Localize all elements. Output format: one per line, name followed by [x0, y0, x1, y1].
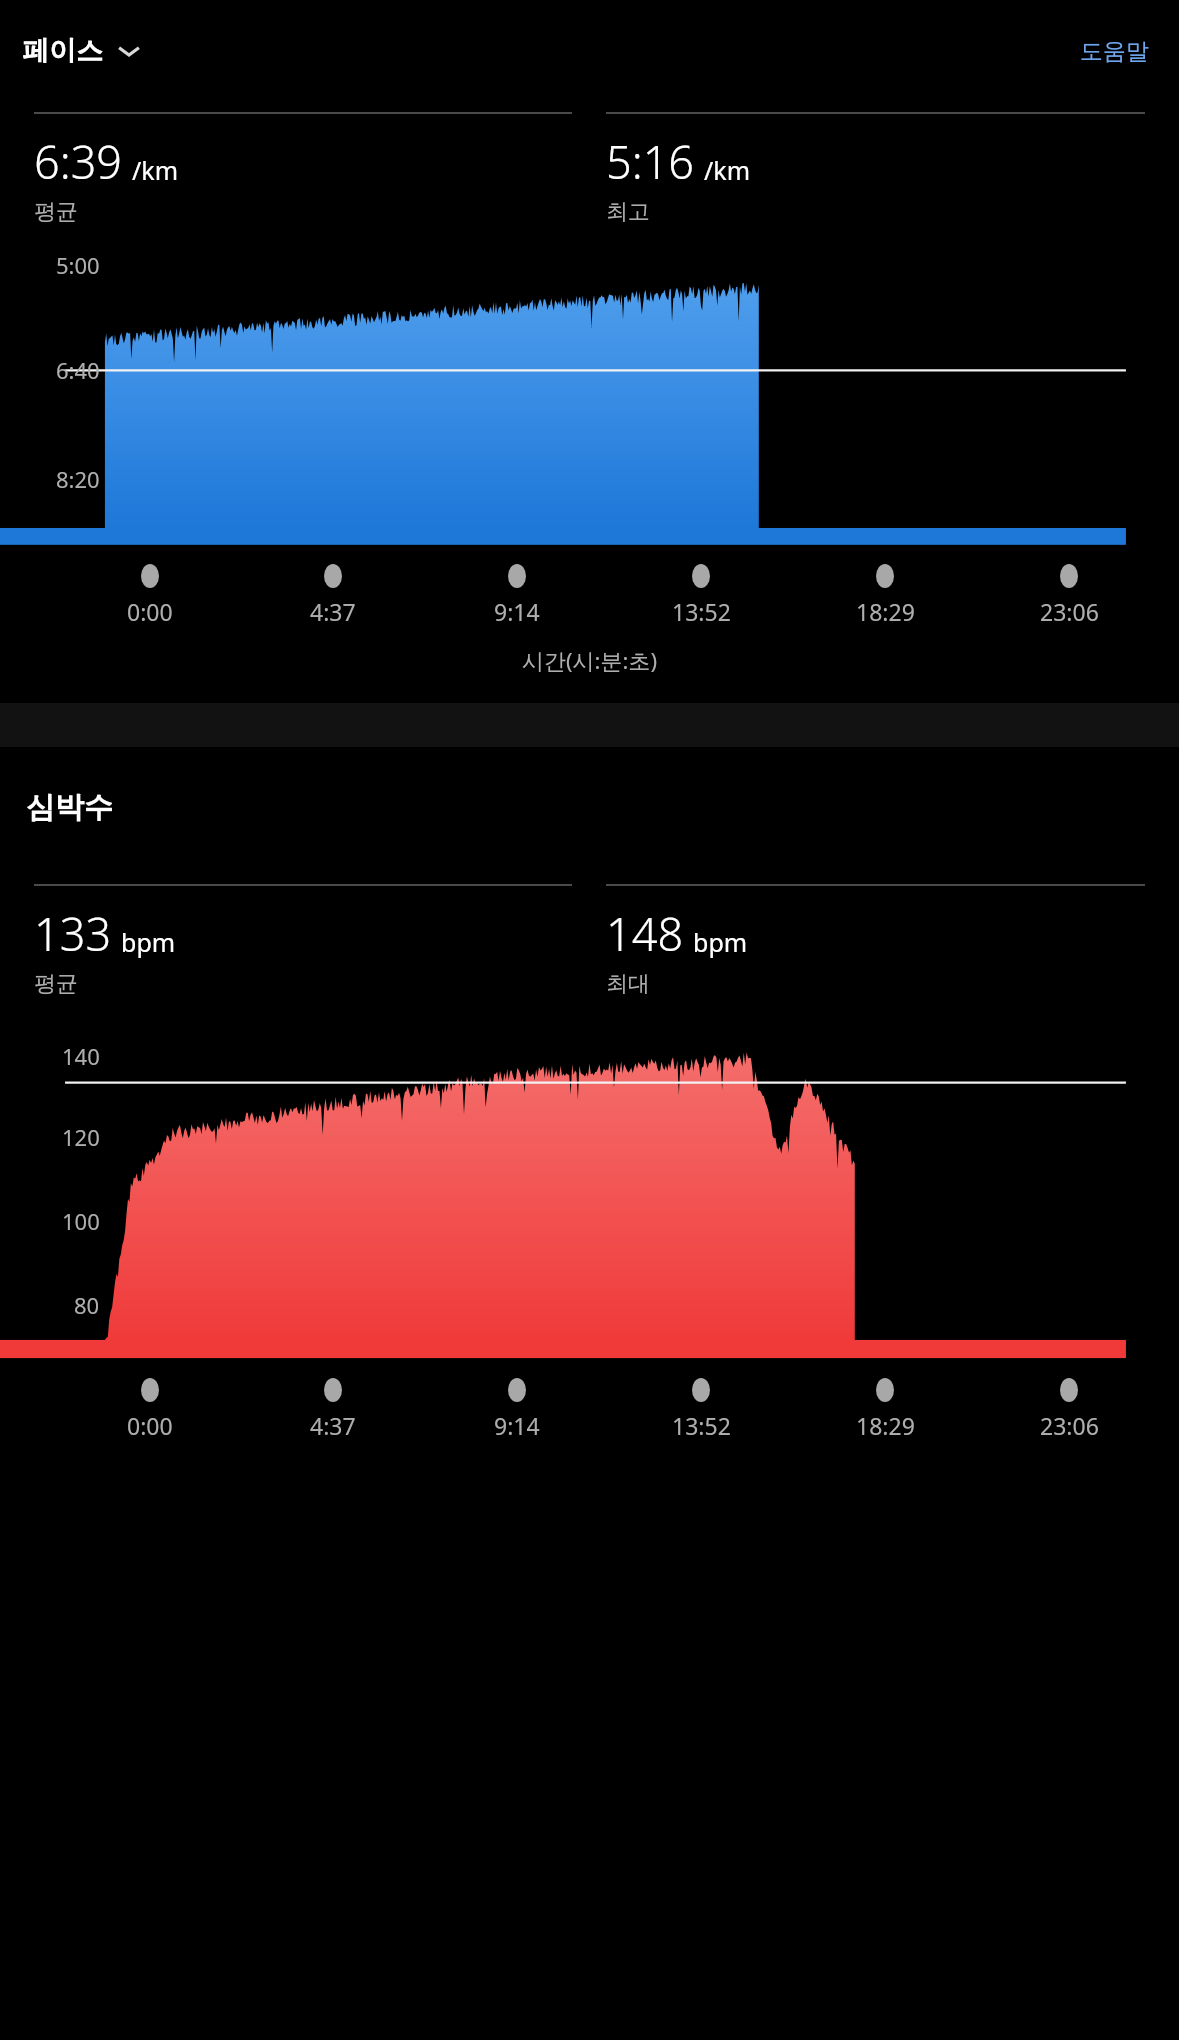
staticText: 0:00: [127, 596, 173, 627]
button[interactable]: 5:16: [606, 112, 1145, 226]
button[interactable]: 148: [606, 884, 1145, 998]
staticText: 18:29: [856, 596, 915, 627]
staticText: 최대: [606, 970, 650, 998]
staticText: 5:00: [56, 250, 100, 280]
staticText: 4:37: [310, 596, 356, 627]
staticText: 6:40: [56, 355, 100, 385]
staticText: 8:20: [56, 464, 100, 494]
staticText: 5:16: [606, 131, 695, 192]
staticText: 13:52: [672, 1410, 731, 1441]
staticText: bpm: [693, 925, 748, 959]
button[interactable]: 6:39: [34, 112, 572, 226]
staticText: 9:14: [494, 1410, 540, 1441]
staticText: bpm: [121, 925, 176, 959]
staticText: 페이스: [22, 34, 103, 68]
staticText: 9:14: [494, 596, 540, 627]
staticText: 심박수: [26, 789, 113, 826]
staticText: 80: [74, 1290, 100, 1320]
staticText: 23:06: [1040, 596, 1099, 627]
staticText: 120: [62, 1122, 100, 1152]
button[interactable]: 133: [34, 884, 572, 998]
staticText: 100: [62, 1206, 100, 1236]
staticText: 평균: [34, 970, 78, 998]
staticText: 평균: [34, 198, 78, 226]
staticText: 140: [62, 1041, 100, 1071]
staticText: 6:39: [34, 131, 123, 192]
staticText: 4:37: [310, 1410, 356, 1441]
staticText: 13:52: [672, 596, 731, 627]
button[interactable]: 도움말: [1072, 29, 1157, 74]
staticText: 최고: [606, 198, 650, 226]
staticText: /km: [132, 153, 179, 187]
button[interactable]: 페이스: [22, 28, 142, 74]
staticText: 133: [34, 903, 112, 964]
staticText: 시간(시:분:초): [522, 645, 657, 675]
staticText: 148: [606, 903, 684, 964]
staticText: 23:06: [1040, 1410, 1099, 1441]
staticText: 도움말: [1080, 37, 1149, 66]
staticText: 0:00: [127, 1410, 173, 1441]
staticText: 18:29: [856, 1410, 915, 1441]
staticText: /km: [704, 153, 751, 187]
